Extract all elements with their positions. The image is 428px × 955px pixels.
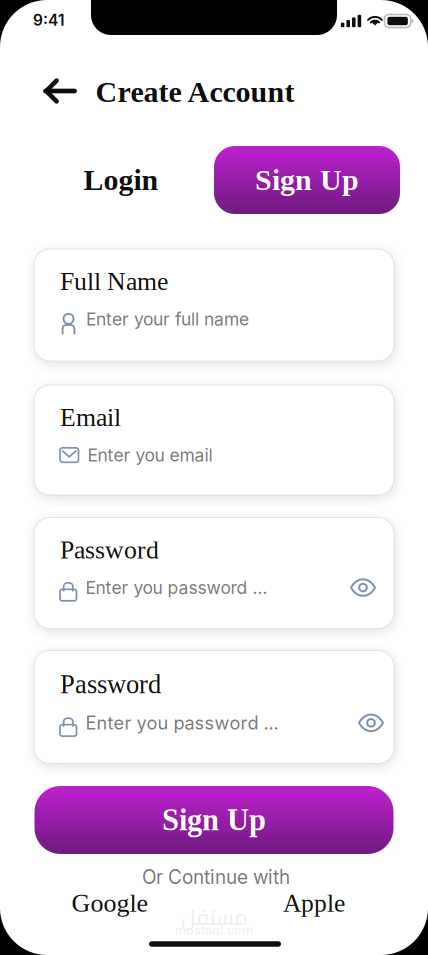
button[interactable]: Sign Up	[34, 786, 393, 854]
staticText: Sign Up	[255, 163, 359, 197]
staticText: Password	[60, 669, 161, 699]
staticText: Or Continue with	[142, 865, 290, 888]
button[interactable]: Show password	[350, 579, 376, 597]
staticText: Create Account	[95, 75, 294, 109]
button[interactable]: Google	[71, 889, 148, 917]
button[interactable]: Apple	[283, 889, 345, 917]
staticText: Email	[60, 403, 121, 431]
button[interactable]: Sign Up	[214, 146, 400, 214]
staticText: Enter you email	[87, 444, 212, 466]
staticText: Enter you password ...	[85, 577, 267, 598]
button[interactable]: Back	[43, 79, 77, 103]
staticText: Password	[60, 535, 159, 564]
staticText: Login	[83, 163, 158, 197]
staticText: Sign Up	[162, 803, 266, 837]
staticText: Google	[71, 889, 148, 917]
staticText: Enter you password ...	[85, 712, 278, 734]
button[interactable]: Create Account	[95, 75, 294, 109]
button[interactable]: Show password	[358, 714, 384, 732]
staticText: Enter your full name	[86, 308, 249, 330]
staticText: 9:41	[33, 11, 65, 29]
staticText: mostaql.com	[175, 922, 253, 938]
staticText: Full Name	[60, 267, 168, 295]
button[interactable]: Login	[66, 146, 176, 213]
staticText: Apple	[283, 889, 345, 917]
staticText: مستقل	[180, 897, 247, 937]
